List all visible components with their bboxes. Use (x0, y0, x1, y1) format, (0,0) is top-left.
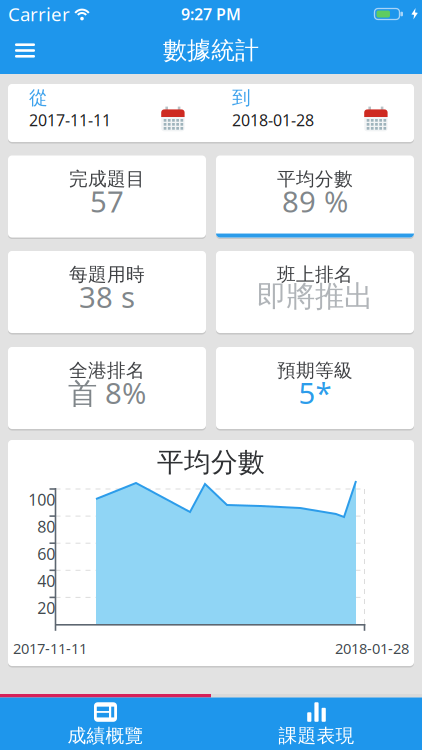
staticText: 班上排名 (277, 263, 353, 286)
staticText: 9:27 PM (181, 3, 241, 25)
staticText: 課題表現 (278, 724, 354, 747)
staticText: 89 % (282, 181, 348, 220)
staticText: 首 8% (68, 373, 146, 412)
staticText: 20 (37, 597, 55, 618)
staticText: 全港排名 (69, 359, 145, 382)
button[interactable]: 全港排名 (8, 347, 206, 429)
staticText: 57 (90, 181, 124, 220)
staticText: 即將推出 (257, 278, 373, 314)
button[interactable]: Menu (0, 32, 47, 74)
staticText: 成績概覽 (67, 724, 143, 747)
staticText: 平均分數 (157, 446, 265, 479)
button[interactable]: 從 (8, 84, 211, 142)
button[interactable]: 預期等級 (216, 347, 414, 429)
staticText: 數據統計 (163, 36, 259, 65)
button[interactable]: 班上排名 (216, 251, 414, 333)
staticText: 從 (29, 86, 48, 109)
staticText: 完成題目 (69, 167, 145, 190)
staticText: 5* (298, 373, 331, 412)
staticText: 40 (37, 570, 55, 591)
button[interactable]: 到 (211, 84, 414, 142)
staticText: 每題用時 (69, 263, 145, 286)
button[interactable]: 課題表現 (211, 697, 422, 750)
staticText: 2018-01-28 (335, 638, 409, 658)
staticText: 到 (232, 86, 251, 109)
staticText: 預期等級 (277, 359, 353, 382)
staticText: 38 s (79, 277, 135, 316)
staticText: 平均分數 (277, 167, 353, 190)
button[interactable]: 每題用時 (8, 251, 206, 333)
staticText: 2018-01-28 (232, 109, 314, 130)
staticText: 80 (37, 516, 55, 537)
staticText: Carrier (8, 2, 70, 26)
staticText: 60 (37, 543, 55, 564)
staticText: 2017-11-11 (29, 109, 111, 130)
button[interactable]: 平均分數 (216, 155, 414, 237)
button[interactable]: 成績概覽 (0, 697, 211, 750)
staticText: 100 (28, 489, 55, 510)
button[interactable]: 完成題目 (8, 155, 206, 237)
staticText: 2017-11-11 (13, 638, 87, 658)
